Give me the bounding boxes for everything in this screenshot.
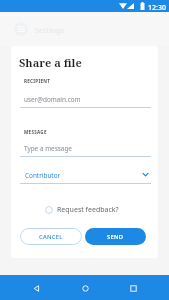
button[interactable]: Home — [73, 276, 97, 300]
staticText: 12:30 — [148, 3, 166, 13]
staticText: Request feedback? — [57, 205, 119, 215]
button[interactable]: Contributor — [20, 168, 151, 184]
button[interactable]: Request feedback? — [45, 204, 119, 216]
button[interactable]: Recents — [121, 276, 145, 300]
button[interactable]: user@domain.com — [20, 92, 151, 108]
staticText: SEND — [107, 233, 124, 241]
staticText: Share a file — [19, 55, 82, 70]
button[interactable]: CANCEL — [20, 228, 82, 245]
button[interactable]: Type a message — [20, 141, 151, 157]
staticText: user@domain.com — [24, 95, 81, 104]
staticText: Type a message — [24, 144, 72, 153]
button[interactable]: SEND — [85, 228, 146, 245]
button[interactable]: Back — [24, 276, 48, 300]
staticText: Settings — [35, 25, 65, 35]
staticText: CANCEL — [39, 233, 63, 241]
staticText: RECIPIENT — [24, 78, 51, 84]
staticText: Contributor — [25, 171, 61, 180]
staticText: MESSAGE — [24, 129, 47, 135]
